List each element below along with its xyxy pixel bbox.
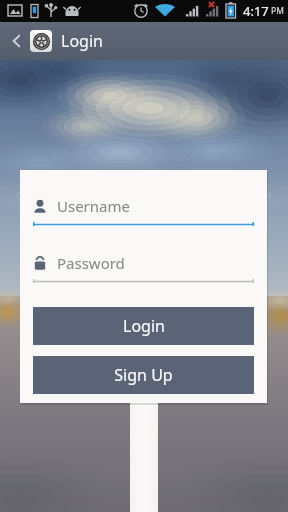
button[interactable]: Password xyxy=(33,250,254,285)
staticText: 4:17 xyxy=(243,2,269,20)
staticText: Username xyxy=(57,196,130,216)
staticText: Login xyxy=(61,30,103,52)
button[interactable]: Login xyxy=(33,307,254,345)
button[interactable]: Sign Up xyxy=(33,356,254,394)
button[interactable]: Back xyxy=(6,22,28,60)
staticText: Login xyxy=(123,315,165,337)
staticText: Password xyxy=(57,253,125,273)
button[interactable]: Username xyxy=(33,193,254,228)
staticText: Sign Up xyxy=(114,364,173,386)
staticText: PM xyxy=(271,5,284,17)
